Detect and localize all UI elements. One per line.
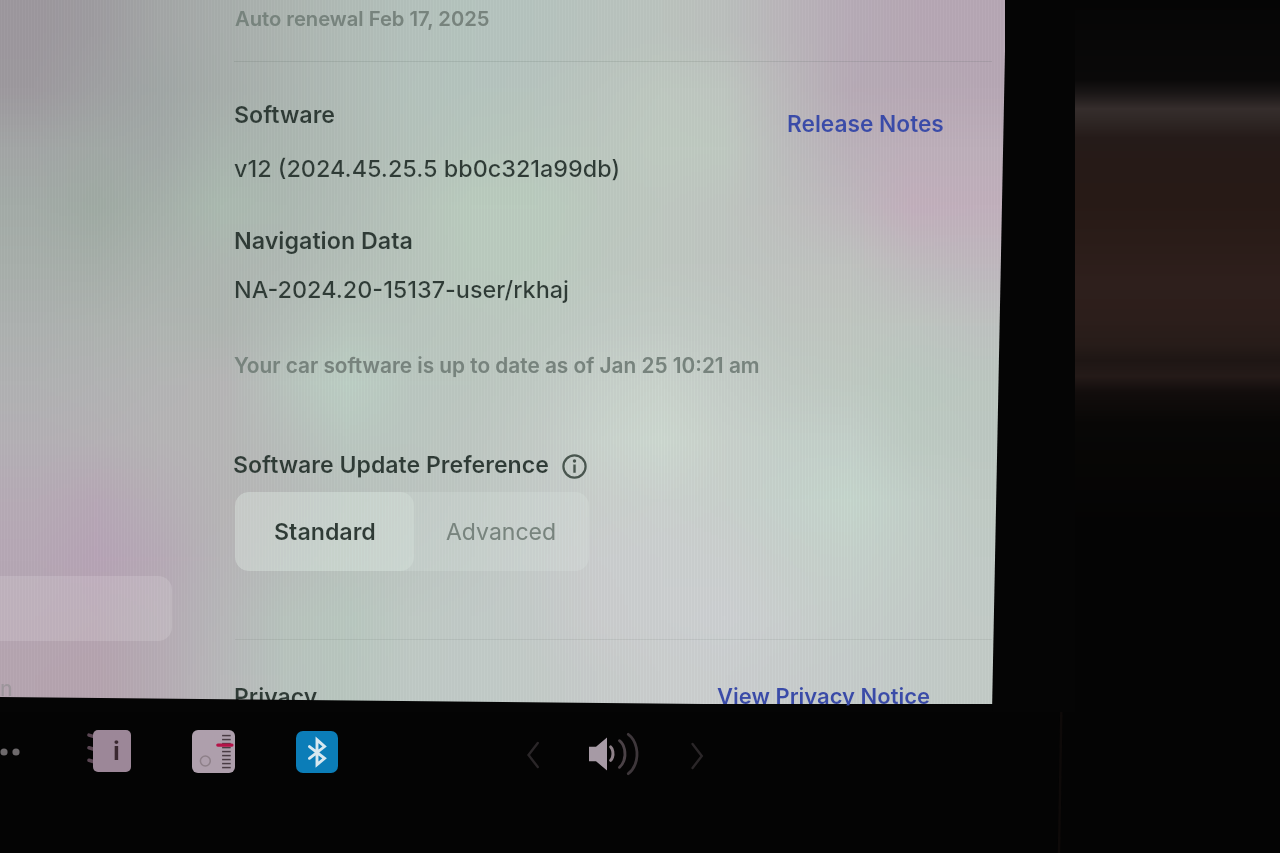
staticText: n xyxy=(0,676,13,701)
button[interactable]: Next xyxy=(689,744,705,768)
staticText: Advanced xyxy=(446,518,557,546)
button[interactable]: Info xyxy=(562,454,587,479)
button[interactable]: Volume xyxy=(588,736,638,772)
button[interactable]: Owner's manual xyxy=(93,730,131,772)
staticText: NA-2024.20-15137-user/rkhaj xyxy=(234,275,569,303)
staticText: Your car software is up to date as of Ja… xyxy=(234,353,760,378)
button[interactable]: Previous xyxy=(525,743,541,767)
staticText: Release Notes xyxy=(787,110,944,137)
button[interactable]: Climate xyxy=(192,730,235,773)
staticText: Standard xyxy=(274,518,376,546)
button[interactable]: Release Notes xyxy=(787,110,944,137)
staticText: Auto renewal Feb 17, 2025 xyxy=(235,6,490,30)
staticText: View Privacy Notice xyxy=(717,683,931,710)
button[interactable]: More xyxy=(0,742,24,762)
staticText: Privacy xyxy=(234,683,318,711)
staticText: Software xyxy=(234,101,336,129)
staticText: v12 (2024.45.25.5 bb0c321a99db) xyxy=(234,154,621,182)
staticText: Software Update Preference xyxy=(233,451,549,479)
button[interactable]: Advanced xyxy=(414,492,589,571)
button[interactable]: Bluetooth xyxy=(296,731,338,773)
staticText: Navigation Data xyxy=(234,226,413,254)
button[interactable]: Standard xyxy=(235,492,414,571)
button[interactable]: View Privacy Notice xyxy=(717,683,931,710)
staticText: i xyxy=(113,736,120,766)
